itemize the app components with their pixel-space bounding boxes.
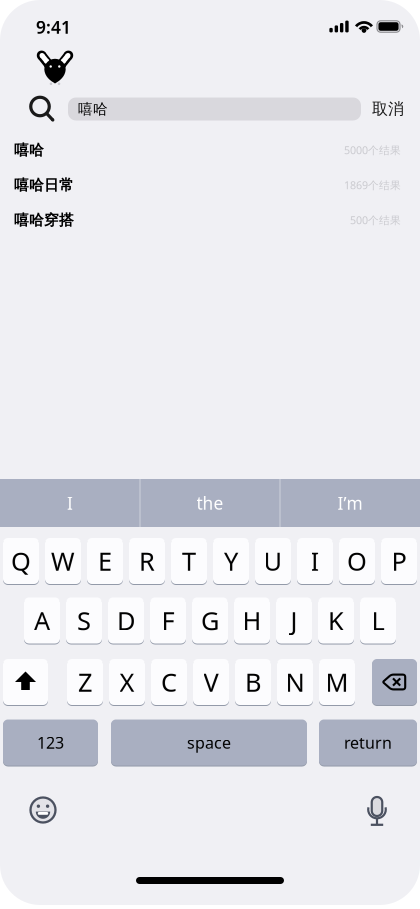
staticText: L <box>371 604 384 637</box>
button[interactable]: 嘻哈穿搭 <box>0 202 420 237</box>
button[interactable]: the <box>141 479 279 527</box>
button[interactable]: V <box>193 659 229 705</box>
button[interactable]: P <box>381 538 417 584</box>
staticText: O <box>347 544 367 578</box>
staticText: Z <box>78 665 92 699</box>
button[interactable]: 123 <box>3 719 98 765</box>
button[interactable]: 取消 <box>362 94 414 124</box>
staticText: W <box>51 544 75 578</box>
button[interactable]: L <box>360 597 396 643</box>
button[interactable]: I <box>1 479 139 527</box>
staticText: I <box>67 491 73 514</box>
button[interactable]: Shift <box>3 659 48 705</box>
staticText: G <box>201 604 219 637</box>
staticText: K <box>328 604 344 637</box>
staticText: return <box>344 732 392 753</box>
button[interactable]: N <box>277 659 313 705</box>
staticText: V <box>203 665 218 699</box>
staticText: 嘻哈 <box>14 141 44 159</box>
staticText: 5000个结果 <box>344 143 401 157</box>
button[interactable]: O <box>339 538 375 584</box>
staticText: M <box>325 665 348 699</box>
staticText: 取消 <box>372 99 404 119</box>
button[interactable]: Y <box>213 538 249 584</box>
button[interactable]: return <box>319 719 417 765</box>
button[interactable]: Delete <box>372 659 417 705</box>
staticText: E <box>98 544 112 578</box>
staticText: 嘻哈 <box>78 100 108 118</box>
button[interactable]: 嘻哈 <box>0 132 420 167</box>
staticText: 123 <box>37 732 64 753</box>
staticText: T <box>182 544 196 578</box>
staticText: H <box>242 604 261 637</box>
staticText: C <box>161 665 177 699</box>
button[interactable]: I’m <box>281 479 419 527</box>
button[interactable]: Search field <box>68 97 361 120</box>
button[interactable]: Dictation <box>355 788 399 832</box>
button[interactable]: space <box>111 719 307 765</box>
button[interactable]: E <box>87 538 123 584</box>
button[interactable]: R <box>129 538 165 584</box>
staticText: space <box>187 732 231 753</box>
button[interactable]: Emoji <box>21 788 65 832</box>
staticText: R <box>139 544 155 578</box>
staticText: I <box>310 544 319 578</box>
button[interactable]: I <box>297 538 333 584</box>
staticText: A <box>34 604 50 637</box>
staticText: 9:41 <box>36 15 71 38</box>
button[interactable]: D <box>108 597 144 643</box>
staticText: U <box>263 544 282 578</box>
staticText: I’m <box>337 491 362 514</box>
staticText: B <box>245 665 261 699</box>
button[interactable]: K <box>318 597 354 643</box>
button[interactable]: X <box>109 659 145 705</box>
button[interactable]: Q <box>3 538 39 584</box>
staticText: 嘻哈日常 <box>14 176 74 194</box>
button[interactable]: J <box>276 597 312 643</box>
staticText: Q <box>11 544 31 578</box>
staticText: the <box>196 491 223 514</box>
button[interactable]: F <box>150 597 186 643</box>
staticText: N <box>285 665 304 699</box>
button[interactable]: H <box>234 597 270 643</box>
staticText: Y <box>224 544 238 578</box>
button[interactable]: S <box>66 597 102 643</box>
button[interactable]: T <box>171 538 207 584</box>
staticText: 嘻哈穿搭 <box>14 211 74 229</box>
staticText: J <box>290 604 297 637</box>
staticText: F <box>161 604 174 637</box>
staticText: 1869个结果 <box>344 178 401 192</box>
button[interactable]: 嘻哈日常 <box>0 167 420 202</box>
button[interactable]: W <box>45 538 81 584</box>
button[interactable]: M <box>319 659 355 705</box>
button[interactable]: C <box>151 659 187 705</box>
button[interactable]: U <box>255 538 291 584</box>
button[interactable]: A <box>24 597 60 643</box>
button[interactable]: B <box>235 659 271 705</box>
staticText: S <box>77 604 91 637</box>
staticText: D <box>117 604 135 637</box>
staticText: 500个结果 <box>350 213 401 227</box>
staticText: X <box>119 665 134 699</box>
staticText: P <box>391 544 406 578</box>
button[interactable]: G <box>192 597 228 643</box>
button[interactable]: Z <box>67 659 103 705</box>
